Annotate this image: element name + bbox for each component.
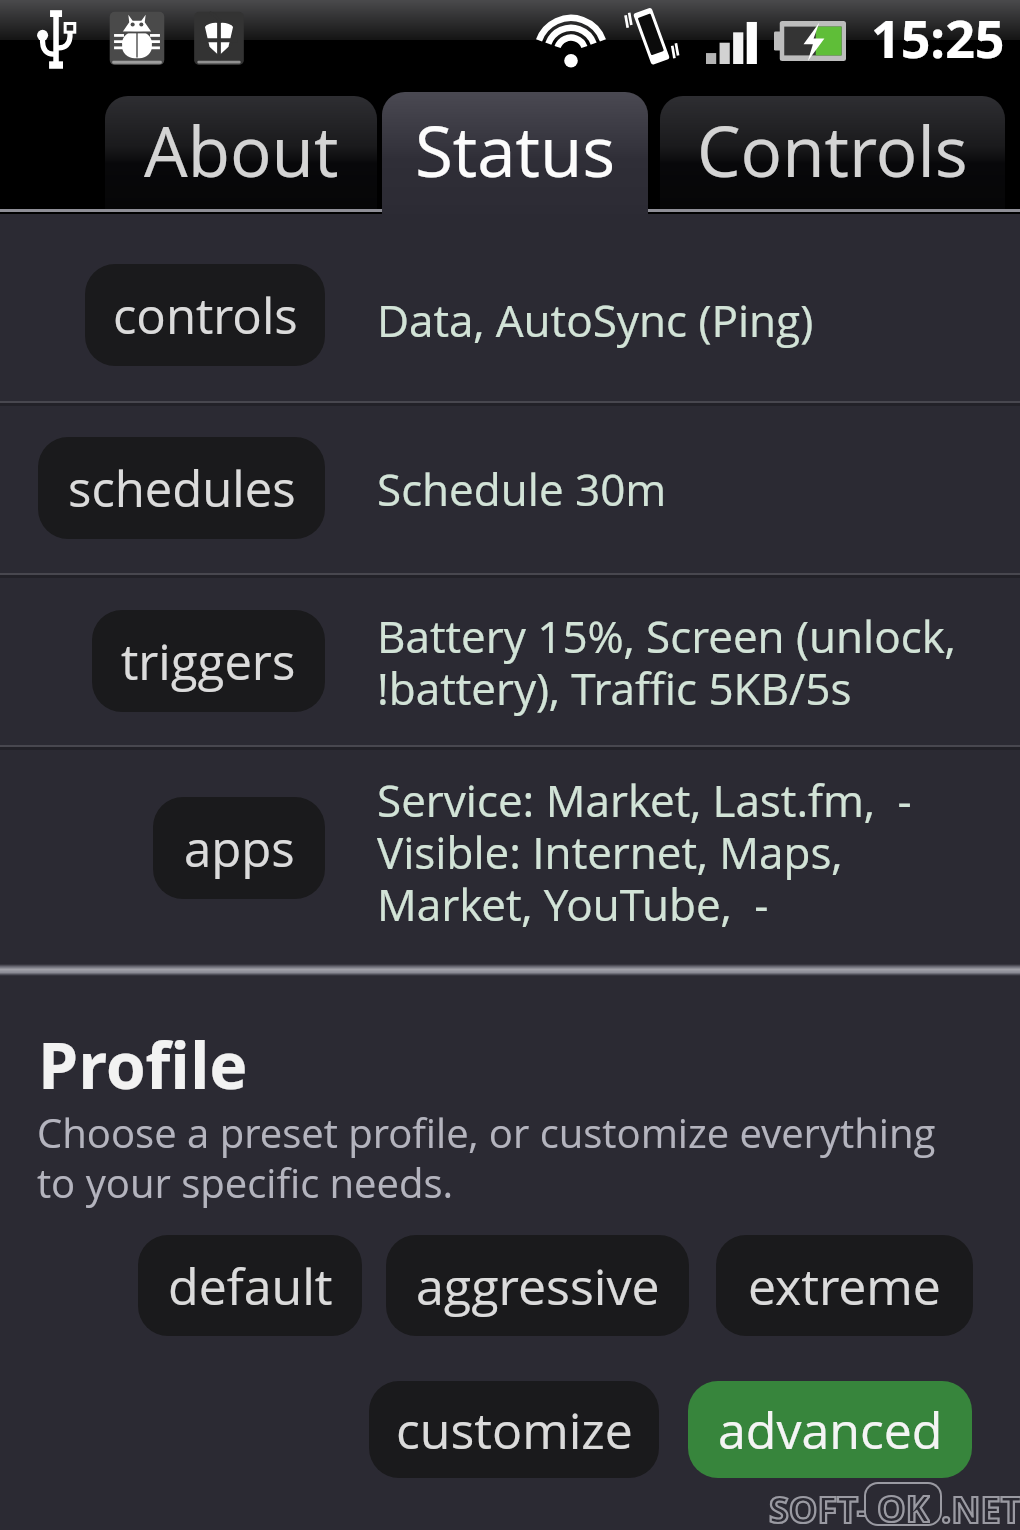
staticText: OK xyxy=(877,1484,930,1524)
other: Debugging enabled xyxy=(106,8,168,70)
staticText: controls xyxy=(113,282,298,349)
staticText: extreme xyxy=(748,1252,941,1320)
staticText: triggers xyxy=(121,628,296,695)
other: Vibrate mode xyxy=(625,5,679,67)
staticText: Data, AutoSync (Ping) xyxy=(377,290,814,350)
button[interactable]: customize xyxy=(369,1381,659,1478)
button[interactable]: apps xyxy=(0,748,1020,965)
staticText: default xyxy=(168,1252,333,1320)
staticText: Profile xyxy=(38,1021,248,1108)
button[interactable]: Status xyxy=(382,92,648,214)
staticText: apps xyxy=(184,815,295,882)
staticText: 15:25 xyxy=(871,2,1005,73)
button[interactable]: About xyxy=(105,96,377,209)
other: Security xyxy=(192,8,246,70)
staticText: Controls xyxy=(697,103,968,197)
button[interactable]: schedules xyxy=(0,404,1020,574)
button[interactable]: extreme xyxy=(716,1235,973,1336)
staticText: SOFT- xyxy=(769,1485,869,1530)
staticText: About xyxy=(144,103,339,197)
staticText: Choose a preset profile, or customize ev… xyxy=(37,1105,936,1210)
staticText: advanced xyxy=(718,1396,943,1464)
staticText: Schedule 30m xyxy=(377,459,667,519)
staticText: Status xyxy=(415,103,616,197)
other: Mobile signal xyxy=(706,22,757,64)
staticText: Battery 15%, Screen (unlock, !battery), … xyxy=(377,606,956,718)
other: Wi-Fi xyxy=(537,9,605,64)
staticText: customize xyxy=(396,1396,633,1464)
button[interactable]: Controls xyxy=(660,96,1005,209)
staticText: aggressive xyxy=(416,1252,660,1320)
button[interactable]: default xyxy=(138,1235,362,1336)
button[interactable]: triggers xyxy=(0,576,1020,746)
staticText: Service: Market, Last.fm, - Visible: Int… xyxy=(377,770,912,934)
other: Battery charging xyxy=(774,21,846,61)
button[interactable]: advanced xyxy=(688,1381,972,1478)
staticText: .NET xyxy=(941,1485,1020,1530)
other: USB connected xyxy=(33,8,81,70)
staticText: schedules xyxy=(68,455,296,522)
button[interactable]: controls xyxy=(0,214,1020,402)
button[interactable]: aggressive xyxy=(386,1235,689,1336)
